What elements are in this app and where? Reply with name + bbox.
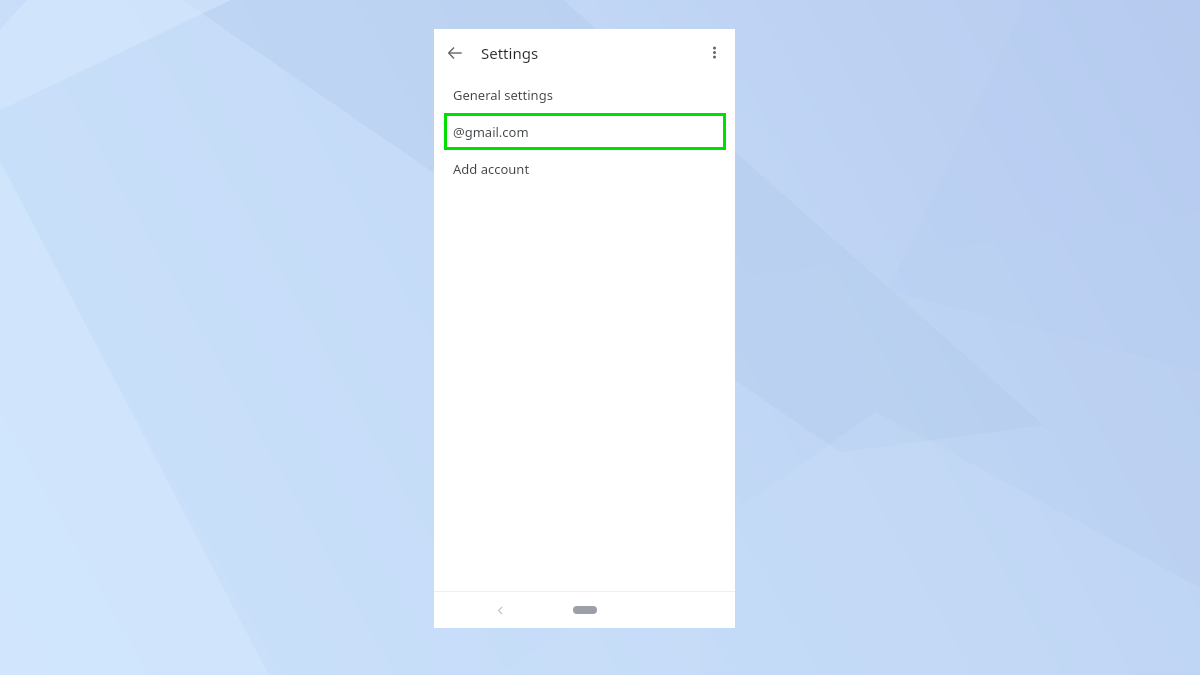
staticText: Settings [481, 43, 539, 63]
button[interactable]: Add account [434, 150, 735, 187]
button[interactable]: Back [435, 29, 475, 76]
staticText: General settings [453, 86, 553, 104]
button[interactable]: General settings [434, 76, 735, 113]
button[interactable]: Home [559, 592, 611, 628]
staticText: @gmail.com [453, 123, 529, 141]
button[interactable]: Back [484, 592, 516, 628]
button[interactable]: @gmail.com [444, 113, 726, 150]
staticText: Add account [453, 160, 530, 178]
button[interactable]: More options [697, 29, 731, 76]
